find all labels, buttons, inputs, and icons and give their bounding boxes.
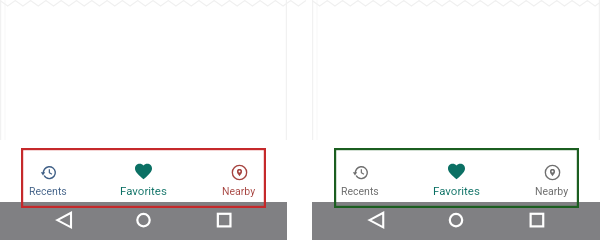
- staticText: Recents: [341, 185, 379, 197]
- button[interactable]: Favorites: [408, 140, 504, 202]
- button[interactable]: Nearby: [191, 140, 287, 202]
- staticText: Favorites: [120, 184, 167, 197]
- staticText: Recents: [29, 185, 67, 197]
- button[interactable]: Recents: [0, 140, 95, 202]
- staticText: Nearby: [535, 185, 569, 197]
- staticText: Favorites: [433, 184, 480, 197]
- button[interactable]: Nearby: [504, 140, 600, 202]
- button[interactable]: Recents: [312, 140, 408, 202]
- button[interactable]: Favorites: [95, 140, 191, 202]
- staticText: Nearby: [222, 185, 256, 197]
